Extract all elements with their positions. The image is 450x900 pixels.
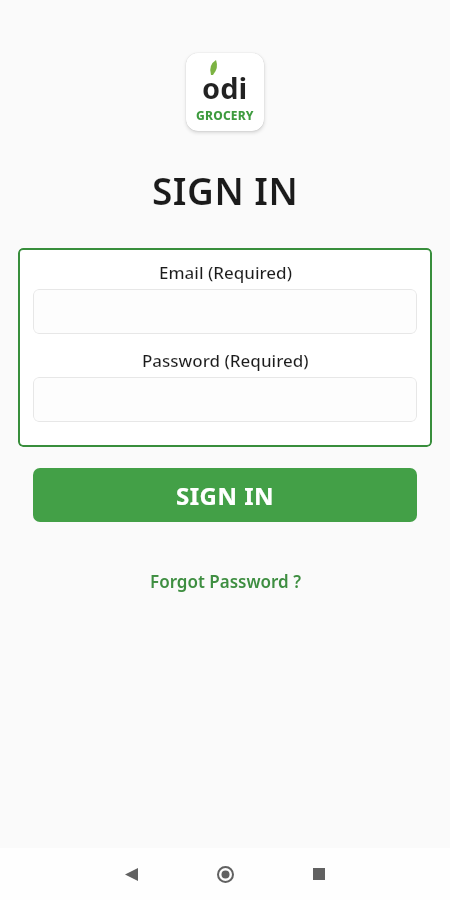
button[interactable]: [201, 850, 249, 898]
button[interactable]: odi: [186, 53, 264, 131]
staticText: Password (Required): [142, 349, 309, 372]
button[interactable]: [295, 850, 343, 898]
staticText: SIGN IN: [152, 165, 299, 215]
button[interactable]: [33, 377, 417, 422]
staticText: Email (Required): [159, 261, 292, 284]
button[interactable]: SIGN IN: [33, 468, 417, 522]
staticText: SIGN IN: [176, 479, 275, 512]
button[interactable]: Forgot Password ?: [150, 570, 301, 593]
button[interactable]: [33, 289, 417, 334]
button[interactable]: [107, 850, 155, 898]
staticText: GROCERY: [196, 107, 254, 123]
staticText: odi: [202, 68, 248, 107]
